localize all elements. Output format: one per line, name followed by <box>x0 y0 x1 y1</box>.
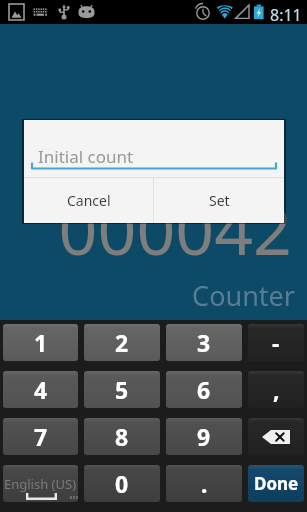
button[interactable]: Delete <box>248 418 304 455</box>
button[interactable]: Done <box>248 465 304 502</box>
button[interactable]: 5 <box>84 371 160 408</box>
button[interactable]: 4 <box>3 371 78 408</box>
staticText: 2 <box>115 327 129 358</box>
button[interactable]: - <box>248 324 304 361</box>
staticText: 1 <box>34 327 48 358</box>
button[interactable]: 0 <box>84 465 160 502</box>
button[interactable]: 9 <box>166 418 242 455</box>
button[interactable]: . <box>166 465 242 502</box>
staticText: 000042 <box>0 182 292 275</box>
staticText: . <box>201 468 208 499</box>
staticText: Set <box>209 191 230 210</box>
button[interactable]: 7 <box>3 418 78 455</box>
staticText: 6 <box>197 374 211 405</box>
staticText: , <box>273 374 280 405</box>
staticText: 5 <box>115 374 129 405</box>
staticText: Counter <box>0 277 295 314</box>
button[interactable]: , <box>248 371 304 408</box>
staticText: Initial count <box>38 145 134 168</box>
staticText: - <box>272 327 280 358</box>
staticText: 3 <box>197 327 211 358</box>
staticText: 0 <box>115 468 129 499</box>
button[interactable]: 2 <box>84 324 160 361</box>
button[interactable]: Space <box>3 465 78 502</box>
button[interactable]: 3 <box>166 324 242 361</box>
staticText: 9 <box>197 421 211 452</box>
button[interactable]: 1 <box>3 324 78 361</box>
staticText: 8 <box>115 421 129 452</box>
staticText: 8:11 <box>270 4 302 26</box>
staticText: 7 <box>34 421 48 452</box>
button[interactable]: 6 <box>166 371 242 408</box>
staticText: 4 <box>34 374 48 405</box>
staticText: Done <box>254 472 299 495</box>
button[interactable]: 8 <box>84 418 160 455</box>
staticText: English (US) <box>4 475 77 493</box>
staticText: Cancel <box>67 191 111 210</box>
button[interactable]: Set <box>154 178 284 223</box>
button[interactable]: Cancel <box>24 178 153 223</box>
